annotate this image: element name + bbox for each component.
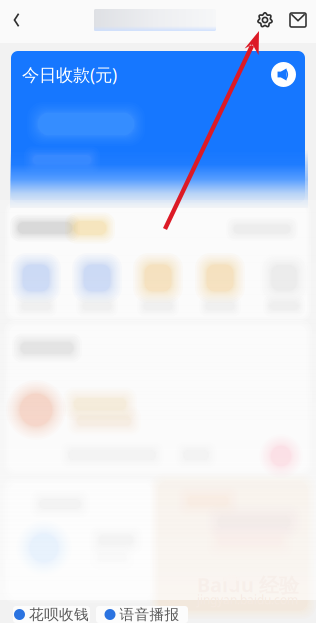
staticText: jingyan.baidu.com <box>197 591 298 607</box>
staticText: 语音播报 <box>119 605 179 623</box>
staticText: 今日收款(元) <box>22 63 117 86</box>
button[interactable]: 花呗收钱 <box>13 606 90 623</box>
button[interactable]: Messages <box>280 0 316 40</box>
button[interactable]: Back <box>0 0 34 40</box>
button[interactable]: Settings <box>250 0 280 40</box>
button[interactable]: Voice announcement <box>271 62 296 87</box>
staticText: 花呗收钱 <box>29 605 89 623</box>
button[interactable]: 语音播报 <box>96 606 188 623</box>
